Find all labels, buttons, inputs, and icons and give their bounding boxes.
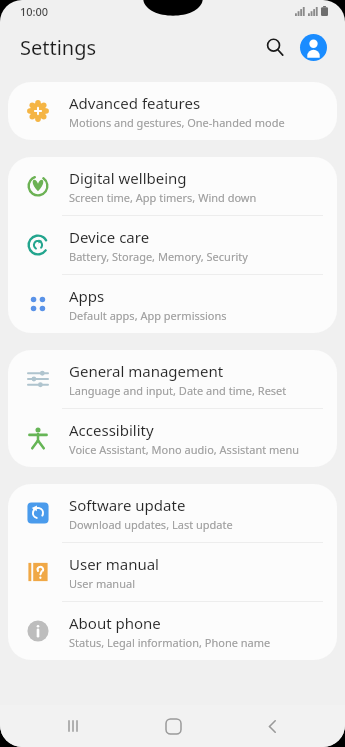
staticText: Battery, Storage, Memory, Security bbox=[69, 249, 248, 264]
button[interactable]: Accessibility bbox=[8, 409, 337, 467]
staticText: User manual bbox=[69, 576, 135, 591]
staticText: User manual bbox=[69, 554, 159, 574]
button[interactable]: Device care bbox=[8, 216, 337, 274]
button[interactable]: User manual bbox=[8, 543, 337, 601]
staticText: 10:00 bbox=[20, 4, 49, 19]
staticText: Motions and gestures, One-handed mode bbox=[69, 115, 285, 130]
staticText: Advanced features bbox=[69, 93, 201, 113]
staticText: Voice Assistant, Mono audio, Assistant m… bbox=[69, 442, 300, 457]
staticText: Apps bbox=[69, 286, 105, 306]
staticText: General management bbox=[69, 361, 224, 381]
button[interactable]: Software update bbox=[8, 484, 337, 542]
button[interactable]: About phone bbox=[8, 602, 337, 660]
button[interactable]: Digital wellbeing bbox=[8, 157, 337, 215]
button[interactable]: General management bbox=[8, 350, 337, 408]
staticText: Settings bbox=[20, 34, 97, 61]
staticText: Software update bbox=[69, 495, 186, 515]
staticText: Default apps, App permissions bbox=[69, 308, 227, 323]
button[interactable]: Advanced features bbox=[8, 82, 337, 140]
button[interactable]: Apps bbox=[8, 275, 337, 333]
staticText: Status, Legal information, Phone name bbox=[69, 635, 271, 650]
button[interactable]: Back bbox=[246, 705, 298, 747]
button[interactable]: Search bbox=[257, 29, 293, 65]
button[interactable]: Recent apps bbox=[47, 705, 99, 747]
staticText: Download updates, Last update bbox=[69, 517, 233, 532]
staticText: Screen time, App timers, Wind down bbox=[69, 190, 257, 205]
staticText: Digital wellbeing bbox=[69, 168, 187, 188]
staticText: Device care bbox=[69, 227, 150, 247]
staticText: About phone bbox=[69, 613, 161, 633]
button[interactable]: Home bbox=[147, 705, 199, 747]
button[interactable]: Account bbox=[295, 29, 331, 65]
staticText: Accessibility bbox=[69, 420, 154, 440]
staticText: Language and input, Date and time, Reset bbox=[69, 383, 287, 398]
